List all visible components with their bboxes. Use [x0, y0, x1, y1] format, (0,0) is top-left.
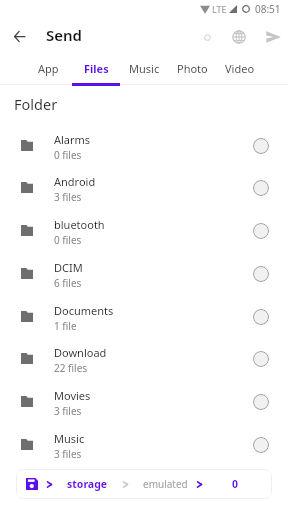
button[interactable]: Storage — [26, 478, 38, 490]
button[interactable]: bluetooth — [0, 209, 288, 252]
staticText: Movies — [54, 388, 91, 403]
staticText: Folder — [14, 94, 58, 114]
button[interactable]: Alarms — [0, 124, 288, 167]
button[interactable]: Select Alarms — [253, 138, 269, 154]
button[interactable]: Back — [0, 18, 38, 56]
staticText: 08:51 — [255, 2, 281, 16]
staticText: App — [38, 61, 59, 76]
button[interactable]: Select Documents — [253, 309, 269, 325]
button[interactable]: Android — [0, 166, 288, 209]
button[interactable]: Select Movies — [253, 394, 269, 410]
staticText: DCIM — [54, 260, 83, 275]
button[interactable]: Files — [72, 56, 120, 85]
staticText: 6 files — [54, 276, 82, 290]
button[interactable]: Send — [260, 24, 286, 50]
button[interactable]: DCIM — [0, 252, 288, 295]
staticText: Download — [54, 345, 107, 360]
staticText: 0 files — [54, 148, 82, 162]
staticText: Documents — [54, 303, 114, 318]
button[interactable]: Language — [226, 24, 252, 50]
staticText: 1 file — [54, 319, 77, 333]
staticText: Video — [225, 61, 255, 76]
staticText: Alarms — [54, 132, 91, 147]
button[interactable]: Select Android — [253, 180, 269, 196]
button[interactable]: Search — [194, 24, 220, 50]
button[interactable]: Documents — [0, 295, 288, 338]
button[interactable]: Select Music — [253, 437, 269, 453]
staticText: 3 files — [54, 404, 82, 418]
staticText: 0 files — [54, 233, 82, 247]
staticText: Photo — [177, 61, 208, 76]
staticText: Send — [46, 25, 82, 45]
staticText: LTE — [212, 3, 227, 15]
staticText: 3 files — [54, 447, 82, 461]
button[interactable]: Music — [120, 56, 168, 85]
button[interactable]: App — [24, 56, 72, 85]
button[interactable]: emulated — [143, 477, 188, 491]
button[interactable]: Music — [0, 423, 288, 466]
button[interactable]: 0 — [232, 477, 239, 491]
staticText: 22 files — [54, 361, 88, 375]
button[interactable]: Download — [0, 337, 288, 380]
button[interactable]: Select bluetooth — [253, 223, 269, 239]
staticText: Android — [54, 174, 96, 189]
button[interactable]: Select Download — [253, 351, 269, 367]
button[interactable]: Select DCIM — [253, 266, 269, 282]
button[interactable]: Photo — [168, 56, 216, 85]
staticText: bluetooth — [54, 217, 105, 232]
button[interactable]: Video — [216, 56, 264, 85]
button[interactable]: Movies — [0, 380, 288, 423]
staticText: Music — [54, 431, 85, 446]
staticText: 3 files — [54, 190, 82, 204]
staticText: Music — [129, 61, 160, 76]
staticText: Files — [84, 61, 109, 76]
button[interactable]: storage — [67, 477, 108, 491]
